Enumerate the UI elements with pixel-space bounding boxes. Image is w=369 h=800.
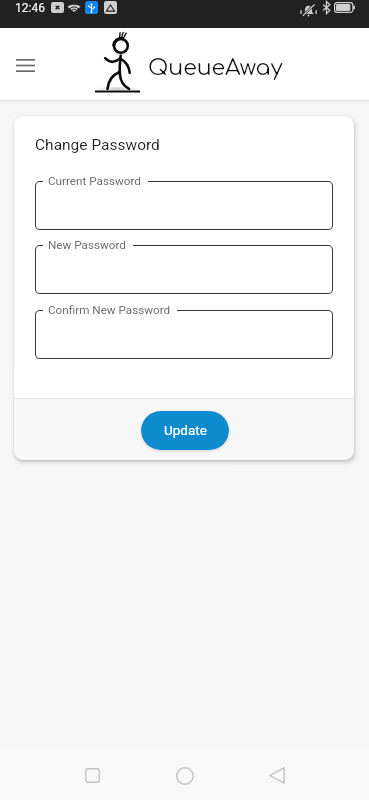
staticText: New Password xyxy=(48,238,126,252)
button[interactable]: Confirm New Password xyxy=(35,310,333,359)
button[interactable]: Back xyxy=(254,753,299,798)
button[interactable]: Home xyxy=(162,753,207,798)
staticText: Change Password xyxy=(35,136,160,154)
button[interactable]: Update xyxy=(141,411,229,450)
button[interactable]: Current Password xyxy=(35,181,333,230)
button[interactable]: New Password xyxy=(35,245,333,294)
staticText: Current Password xyxy=(48,174,141,188)
staticText: Confirm New Password xyxy=(48,303,171,317)
staticText: QueueAway xyxy=(148,56,283,81)
staticText: 12:46 xyxy=(15,1,45,15)
staticText: Update xyxy=(164,422,207,438)
button[interactable]: Recent apps xyxy=(70,753,115,798)
button[interactable]: Open navigation menu xyxy=(5,45,45,85)
